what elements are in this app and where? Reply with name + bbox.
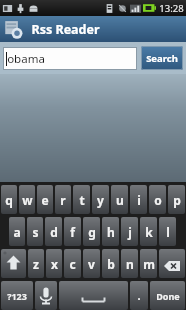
- staticText: u: [116, 192, 124, 208]
- staticText: d: [50, 224, 58, 240]
- button[interactable]: y: [92, 185, 109, 214]
- staticText: m: [143, 256, 155, 272]
- staticText: o: [154, 192, 162, 208]
- staticText: j: [128, 224, 132, 240]
- button[interactable]: q: [1, 185, 17, 214]
- staticText: Done: [156, 290, 180, 302]
- button[interactable]: s: [27, 217, 43, 246]
- staticText: obama: [7, 51, 45, 67]
- button[interactable]: t: [73, 185, 90, 214]
- staticText: Rss Reader: [31, 21, 100, 38]
- button[interactable]: Space: [59, 281, 128, 310]
- staticText: q: [5, 192, 13, 208]
- button[interactable]: obama: [3, 47, 137, 70]
- button[interactable]: a: [9, 217, 25, 246]
- staticText: h: [107, 224, 115, 240]
- button[interactable]: v: [83, 249, 100, 278]
- staticText: b: [107, 256, 115, 272]
- staticText: ?123: [7, 290, 27, 302]
- button[interactable]: e: [37, 185, 53, 214]
- staticText: a: [13, 224, 21, 240]
- button[interactable]: k: [140, 217, 157, 246]
- staticText: f: [70, 224, 75, 240]
- button[interactable]: .: [130, 281, 148, 310]
- staticText: l: [166, 224, 170, 240]
- staticText: t: [79, 192, 85, 208]
- button[interactable]: Shift: [1, 249, 26, 278]
- button[interactable]: f: [64, 217, 81, 246]
- staticText: r: [60, 192, 66, 208]
- button[interactable]: Voice input: [35, 281, 57, 310]
- button[interactable]: l: [159, 217, 176, 246]
- staticText: n: [126, 256, 134, 272]
- button[interactable]: Done: [150, 281, 185, 310]
- button[interactable]: u: [111, 185, 128, 214]
- staticText: 13:28: [159, 2, 184, 15]
- staticText: e: [41, 192, 49, 208]
- staticText: y: [97, 192, 104, 208]
- staticText: p: [173, 192, 181, 208]
- button[interactable]: g: [83, 217, 100, 246]
- button[interactable]: b: [102, 249, 119, 278]
- staticText: .: [137, 288, 141, 303]
- staticText: x: [51, 256, 58, 272]
- button[interactable]: c: [64, 249, 81, 278]
- staticText: v: [88, 256, 95, 272]
- staticText: k: [145, 224, 153, 240]
- button[interactable]: Delete: [159, 249, 185, 278]
- staticText: s: [32, 224, 39, 240]
- button[interactable]: w: [19, 185, 35, 214]
- button[interactable]: x: [46, 249, 62, 278]
- staticText: i: [137, 192, 141, 208]
- button[interactable]: z: [28, 249, 44, 278]
- staticText: z: [33, 256, 39, 272]
- button[interactable]: d: [45, 217, 62, 246]
- staticText: Search: [146, 52, 178, 65]
- button[interactable]: i: [130, 185, 147, 214]
- button[interactable]: o: [149, 185, 166, 214]
- button[interactable]: m: [140, 249, 157, 278]
- button[interactable]: r: [55, 185, 71, 214]
- button[interactable]: p: [168, 185, 185, 214]
- staticText: c: [69, 256, 76, 272]
- button[interactable]: ?123: [1, 281, 33, 310]
- button[interactable]: j: [121, 217, 138, 246]
- button[interactable]: n: [121, 249, 138, 278]
- button[interactable]: h: [102, 217, 119, 246]
- staticText: w: [22, 192, 33, 208]
- staticText: g: [88, 224, 96, 240]
- button[interactable]: Search: [141, 46, 183, 70]
